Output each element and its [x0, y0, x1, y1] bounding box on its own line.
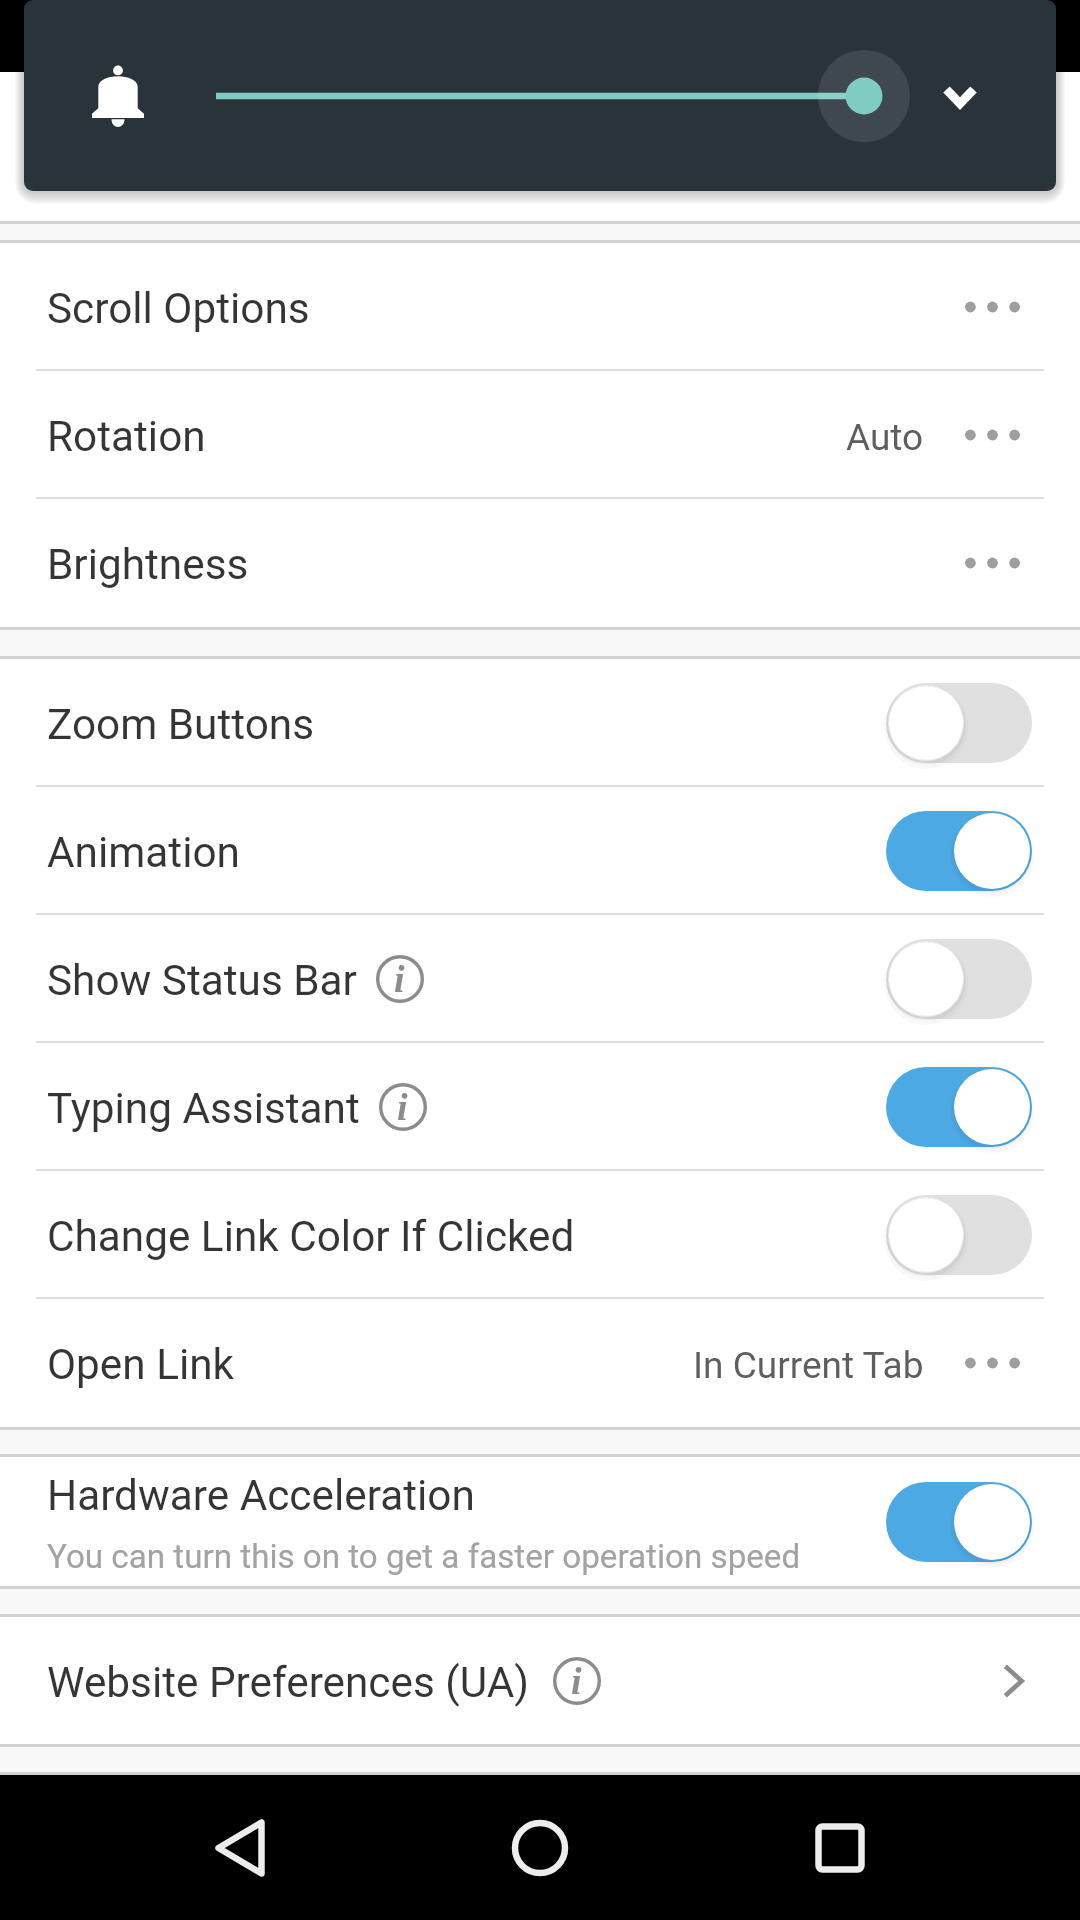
staticText: Zoom Buttons — [47, 700, 314, 750]
staticText: Show Status Bar — [47, 956, 357, 1006]
staticText: Typing Assistant — [47, 1084, 360, 1134]
staticText: Rotation — [47, 412, 206, 462]
staticText: Hardware Acceleration — [47, 1471, 475, 1521]
button[interactable]: Brightness — [0, 499, 1080, 627]
button[interactable]: Collapse — [912, 48, 1008, 144]
staticText: Open Link — [47, 1340, 234, 1390]
staticText: i — [571, 1660, 582, 1702]
button[interactable]: Rotation — [0, 371, 1080, 499]
button[interactable]: Scroll Options — [0, 243, 1080, 371]
button[interactable]: Back — [170, 1778, 310, 1918]
button[interactable]: Typing Assistant — [0, 1043, 1080, 1171]
button[interactable]: Animation — [0, 787, 1080, 915]
staticText: Brightness — [47, 540, 249, 590]
button[interactable]: Notification volume — [24, 0, 1056, 191]
staticText: Auto — [846, 416, 924, 459]
staticText: Change Link Color If Clicked — [47, 1212, 575, 1262]
button[interactable]: Zoom Buttons — [0, 659, 1080, 787]
staticText: In Current Tab — [693, 1344, 924, 1387]
button[interactable]: Home — [470, 1778, 610, 1918]
button[interactable]: Recent apps — [770, 1778, 910, 1918]
button[interactable]: Open Link — [0, 1299, 1080, 1427]
staticText: i — [394, 958, 405, 1000]
button[interactable]: Change Link Color If Clicked — [0, 1171, 1080, 1299]
staticText: Animation — [47, 828, 240, 878]
staticText: i — [397, 1086, 408, 1128]
button[interactable]: Show Status Bar — [0, 915, 1080, 1043]
staticText: You can turn this on to get a faster ope… — [47, 1537, 801, 1576]
button[interactable]: Hardware Acceleration — [0, 1457, 1080, 1586]
staticText: Website Preferences (UA) — [47, 1658, 530, 1708]
button[interactable]: Website Preferences (UA) — [0, 1617, 1080, 1744]
staticText: Scroll Options — [47, 284, 310, 334]
